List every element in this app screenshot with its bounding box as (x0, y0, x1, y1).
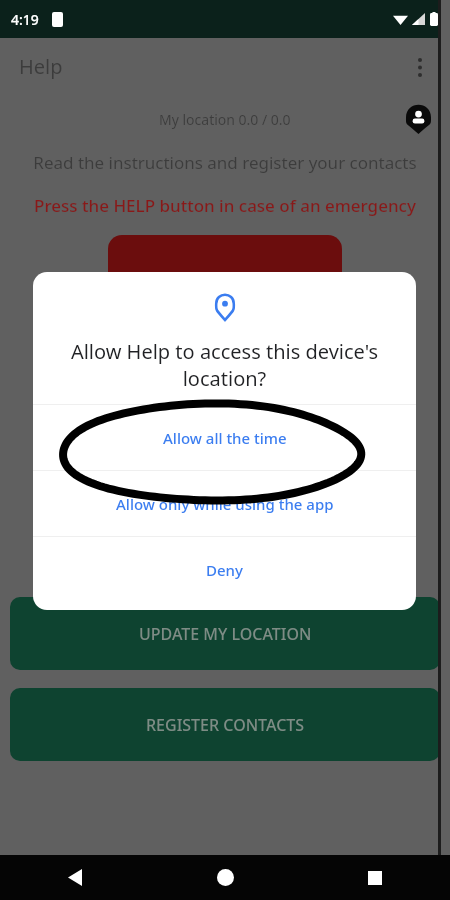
button[interactable]: Allow only while using the app (33, 471, 416, 536)
staticText: Read the instructions and register your … (6, 151, 444, 174)
button[interactable]: Recent apps (300, 855, 450, 900)
staticText: 4:19 (11, 10, 39, 29)
staticText: Press the HELP button in case of an emer… (6, 194, 444, 217)
button[interactable]: More options (398, 45, 442, 89)
button[interactable]: My location (398, 99, 438, 139)
button[interactable]: Deny (33, 537, 416, 602)
button[interactable] (108, 235, 342, 355)
staticText: Deny (206, 560, 243, 580)
button[interactable]: Back (0, 855, 150, 900)
button[interactable]: UPDATE MY LOCATION (10, 597, 440, 670)
staticText: UPDATE MY LOCATION (139, 623, 312, 645)
staticText: My location 0.0 / 0.0 (159, 110, 291, 129)
button[interactable]: Home (150, 855, 300, 900)
staticText: Allow only while using the app (116, 494, 334, 514)
button[interactable]: REGISTER CONTACTS (10, 688, 440, 761)
staticText: Allow Help to access this device's locat… (61, 338, 388, 392)
button[interactable]: Allow all the time (33, 405, 416, 470)
staticText: Allow all the time (163, 428, 287, 448)
staticText: REGISTER CONTACTS (146, 714, 305, 736)
staticText: Help (19, 53, 63, 80)
